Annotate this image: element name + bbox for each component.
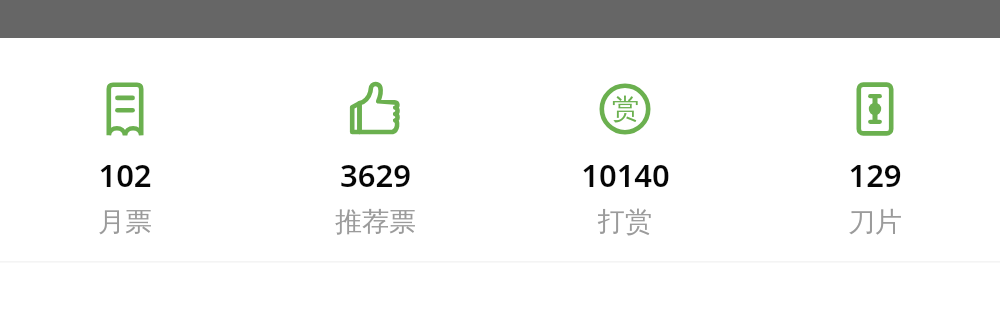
button[interactable]: 推荐票 3629 <box>250 0 500 314</box>
staticText: 月票 <box>98 205 152 239</box>
staticText: 刀片 <box>848 205 902 239</box>
staticText: 129 <box>848 154 902 196</box>
button[interactable]: 刀片 129 <box>750 0 1000 314</box>
staticText: 10140 <box>581 154 670 196</box>
staticText: 推荐票 <box>335 205 416 239</box>
staticText: 102 <box>98 154 152 196</box>
staticText: 赏 <box>612 92 639 126</box>
staticText: 3629 <box>340 154 411 196</box>
button[interactable]: 月票 102 <box>0 0 250 314</box>
staticText: 打赏 <box>598 205 652 239</box>
button[interactable]: 打赏 10140 <box>500 0 750 314</box>
